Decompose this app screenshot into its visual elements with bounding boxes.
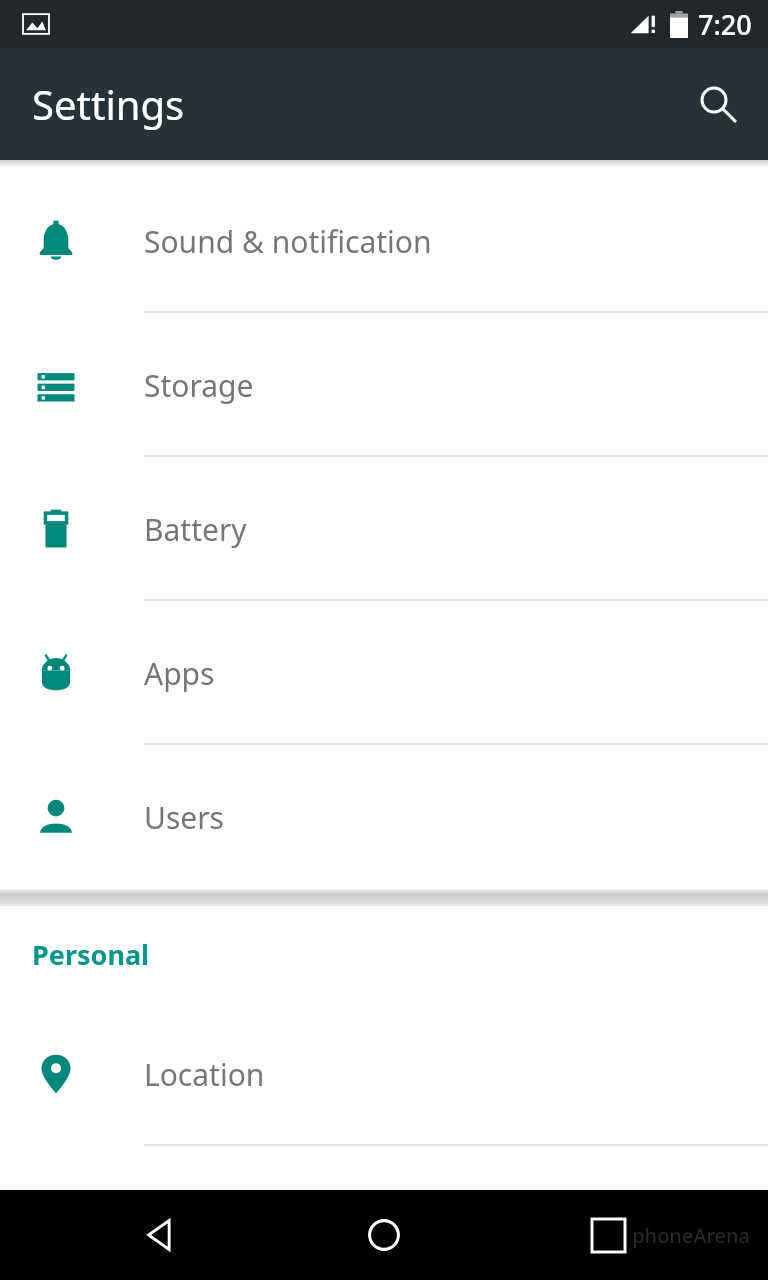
button[interactable]: Recent apps	[568, 1195, 648, 1275]
button[interactable]: Sound & notification	[0, 169, 768, 313]
staticText: Settings	[32, 77, 185, 131]
button[interactable]: Home	[344, 1195, 424, 1275]
staticText: Security	[144, 1193, 257, 1234]
staticText: phoneArena	[632, 1222, 750, 1249]
button[interactable]: Apps	[0, 601, 768, 745]
staticText: Apps	[144, 653, 215, 694]
button[interactable]: Location	[0, 1002, 768, 1146]
staticText: Storage	[144, 365, 254, 406]
button[interactable]: Back	[120, 1195, 200, 1275]
staticText: Location	[144, 1054, 265, 1095]
button[interactable]: Security	[0, 1146, 768, 1280]
button[interactable]: Users	[0, 745, 768, 889]
button[interactable]: Battery	[0, 457, 768, 601]
staticText: Sound & notification	[144, 221, 432, 262]
button[interactable]: Storage	[0, 313, 768, 457]
staticText: 7:20	[698, 6, 752, 43]
staticText: Battery	[144, 509, 247, 550]
button[interactable]: Search	[688, 74, 748, 134]
staticText: Personal	[32, 936, 150, 973]
staticText: Users	[144, 797, 224, 838]
